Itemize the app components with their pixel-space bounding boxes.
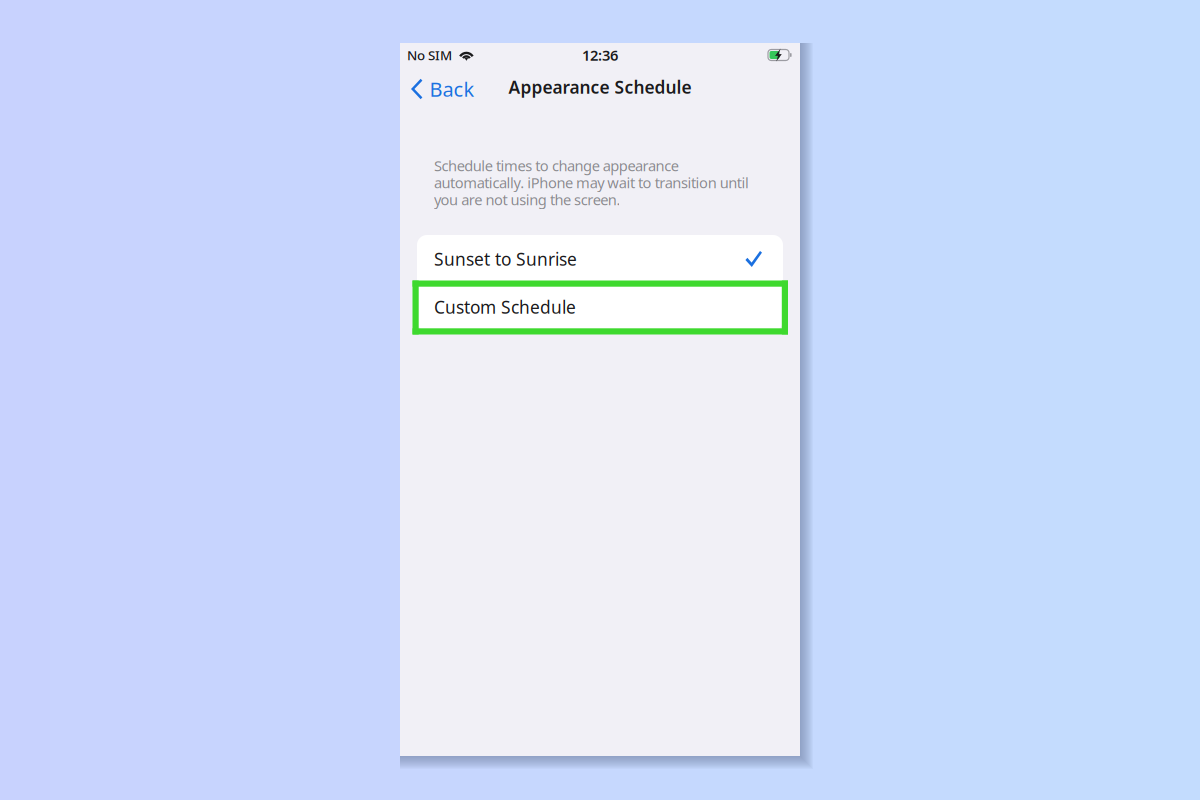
staticText: Sunset to Sunrise	[434, 247, 577, 270]
staticText: automatically. iPhone may wait to transi…	[434, 173, 749, 192]
staticText: Appearance Schedule	[508, 75, 691, 98]
staticText: No SIM	[407, 46, 452, 64]
staticText: Schedule times to change appearance	[434, 156, 679, 175]
staticText: 12:36	[582, 45, 618, 65]
staticText: you are not using the screen.	[434, 190, 620, 209]
button[interactable]: Sunset to Sunrise	[417, 235, 783, 283]
staticText: Back	[429, 76, 474, 102]
button[interactable]: Custom Schedule	[417, 283, 783, 331]
staticText: Custom Schedule	[434, 295, 576, 318]
button[interactable]: Back	[400, 69, 484, 109]
